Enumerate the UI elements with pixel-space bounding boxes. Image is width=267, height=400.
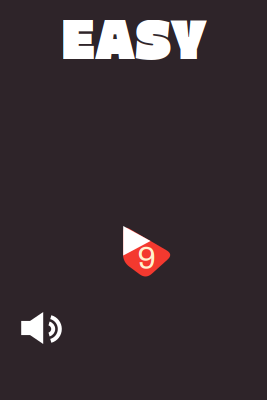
staticText: 9 <box>137 241 155 275</box>
button[interactable]: Sound <box>18 309 66 349</box>
staticText: EASY <box>62 2 207 73</box>
